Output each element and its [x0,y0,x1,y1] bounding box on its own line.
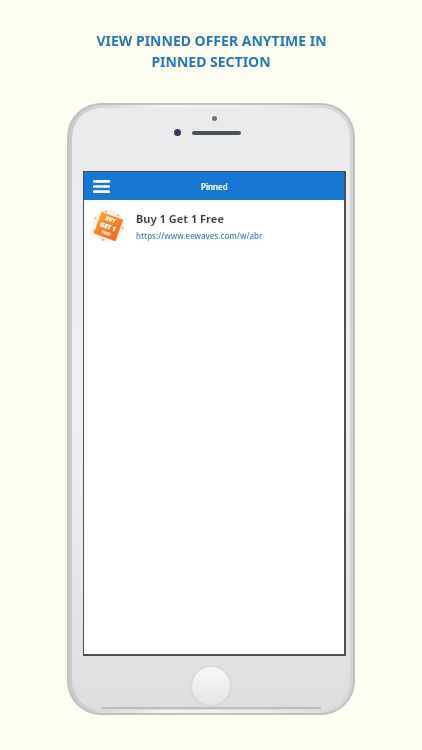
staticText: FREE [101,229,112,237]
staticText: BUY [104,215,117,225]
staticText: PINNED SECTION [151,52,271,71]
staticText: Pinned [201,181,228,192]
staticText: VIEW PINNED OFFER ANYTIME IN [96,31,327,50]
staticText: https://www.eewaves.com/w/abr [136,230,263,241]
button[interactable]: Open navigation menu [88,173,114,199]
button[interactable]: BUY [84,200,344,252]
staticText: GET 1 [99,220,117,234]
staticText: Buy 1 Get 1 Free [136,211,224,226]
